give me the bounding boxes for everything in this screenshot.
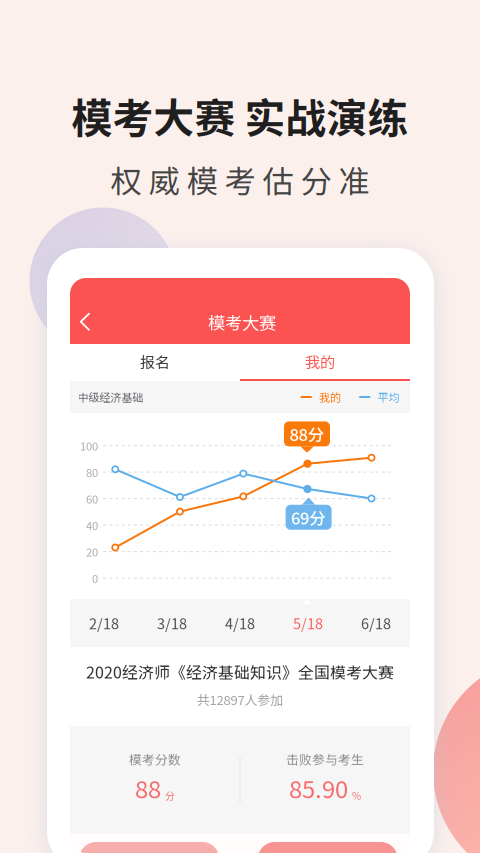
button[interactable]: 成绩单 <box>258 842 398 853</box>
staticText: 100 <box>80 437 98 454</box>
button[interactable]: 3/18 <box>138 599 206 647</box>
staticText: 88分 <box>289 422 324 446</box>
staticText: 平均 <box>377 389 399 405</box>
staticText: 模考大赛 <box>208 309 276 335</box>
button[interactable]: 4/18 <box>206 599 274 647</box>
staticText: 69分 <box>291 505 326 529</box>
staticText: 88 <box>135 771 161 805</box>
button[interactable]: 5/18 <box>274 599 342 647</box>
staticText: 5/18 <box>293 613 323 633</box>
staticText: 40 <box>86 517 98 533</box>
staticText: 4/18 <box>225 613 255 633</box>
staticText: 2/18 <box>89 613 119 633</box>
staticText: 2020经济师《经济基础知识》全国模考大赛 <box>86 660 394 683</box>
button[interactable]: 报名 <box>70 344 240 379</box>
staticText: 3/18 <box>157 613 187 633</box>
staticText: 85.90 <box>289 771 348 805</box>
button[interactable]: 试题解析 <box>79 842 219 853</box>
staticText: 模考分数 <box>129 750 181 768</box>
staticText: 20 <box>86 543 98 560</box>
staticText: 权 威 模 考 估 分 准 <box>110 157 369 202</box>
staticText: 共12897人参加 <box>196 690 283 709</box>
staticText: 我的 <box>319 389 341 405</box>
staticText: % <box>352 788 361 803</box>
staticText: 80 <box>86 464 98 480</box>
button[interactable]: Back <box>70 301 106 343</box>
staticText: 中级经济基础 <box>77 389 143 405</box>
button[interactable]: 2/18 <box>70 599 138 647</box>
staticText: 报名 <box>140 351 170 372</box>
staticText: 0 <box>92 570 98 586</box>
staticText: 模考大赛 实战演练 <box>71 86 408 145</box>
button[interactable]: 我的 <box>240 344 410 381</box>
staticText: 分 <box>165 788 175 803</box>
button[interactable]: 6/18 <box>342 599 410 647</box>
staticText: 我的 <box>305 351 335 372</box>
staticText: 击败参与考生 <box>286 750 364 768</box>
staticText: 60 <box>86 490 98 507</box>
staticText: 6/18 <box>361 613 391 633</box>
